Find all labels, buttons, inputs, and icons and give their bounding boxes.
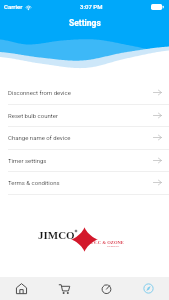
button[interactable]: Home	[0, 277, 43, 300]
staticText: Terms & conditions	[8, 179, 60, 186]
button[interactable]: Timer settings	[0, 149, 169, 171]
staticText: Technology	[107, 245, 120, 248]
staticText: Carrier	[4, 3, 23, 10]
staticText: Reset bulb counter	[8, 112, 58, 119]
staticText: 3:07 PM	[80, 3, 103, 10]
button[interactable]: Shop	[43, 277, 85, 300]
button[interactable]: Timer	[85, 277, 127, 300]
button[interactable]: Reset bulb counter	[0, 104, 169, 126]
button[interactable]: Disconnect from device	[0, 81, 169, 103]
staticText: Settings	[69, 18, 101, 28]
staticText: UV-C & OZONE	[90, 240, 124, 245]
button[interactable]: Settings	[127, 277, 169, 300]
staticText: Disconnect from device	[8, 89, 71, 96]
button[interactable]: Terms & conditions	[0, 171, 169, 193]
staticText: Timer settings	[8, 157, 47, 164]
staticText: JIMCO	[38, 229, 75, 241]
staticText: Change name of device	[8, 134, 71, 141]
button[interactable]: Change name of device	[0, 126, 169, 148]
